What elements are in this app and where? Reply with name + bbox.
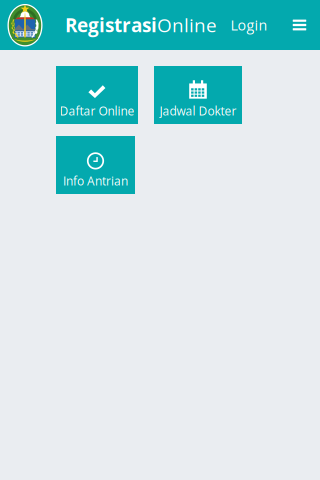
button[interactable]: Daftar Online <box>56 66 138 124</box>
button[interactable]: Menu <box>279 0 320 50</box>
staticText: Registrasi <box>65 12 157 38</box>
staticText: Login <box>230 15 267 35</box>
staticText: Jadwal Dokter <box>159 103 236 119</box>
button[interactable]: Info Antrian <box>56 136 135 194</box>
button[interactable]: Jadwal Dokter <box>154 66 242 124</box>
staticText: Info Antrian <box>63 173 128 189</box>
staticText: Online <box>157 12 217 38</box>
staticText: Daftar Online <box>59 103 134 119</box>
button[interactable]: Login <box>219 0 279 50</box>
